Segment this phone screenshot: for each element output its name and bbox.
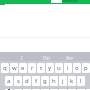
button[interactable]: s <box>14 76 22 86</box>
staticText: l <box>80 77 82 85</box>
staticText: the <box>66 55 73 61</box>
button[interactable] <box>0 0 90 4</box>
staticText: i <box>67 64 69 72</box>
staticText: I'm <box>43 55 50 61</box>
staticText: u <box>57 64 61 72</box>
staticText: d <box>25 77 29 85</box>
staticText: t <box>40 64 43 72</box>
button[interactable] <box>68 89 76 90</box>
button[interactable]: f <box>32 76 40 86</box>
button[interactable]: h <box>50 76 58 86</box>
button[interactable] <box>0 52 90 61</box>
button[interactable] <box>23 89 31 90</box>
staticText: f <box>35 77 38 85</box>
button[interactable]: a <box>5 76 13 86</box>
button[interactable] <box>59 89 67 90</box>
button[interactable] <box>5 89 13 90</box>
button[interactable]: t <box>37 63 45 73</box>
button[interactable] <box>50 89 58 90</box>
button[interactable]: I'm <box>38 54 54 61</box>
button[interactable]: p <box>82 63 90 73</box>
button[interactable]: j <box>59 76 67 86</box>
button[interactable]: l <box>77 76 85 86</box>
staticText: p <box>84 64 88 72</box>
button[interactable]: o <box>73 63 81 73</box>
button[interactable] <box>86 89 90 90</box>
button[interactable]: g <box>41 76 49 86</box>
button[interactable] <box>77 89 85 90</box>
button[interactable]: i <box>64 63 72 73</box>
button[interactable]: q <box>1 63 9 73</box>
staticText: I <box>21 55 23 61</box>
button[interactable]: d <box>23 76 31 86</box>
button[interactable] <box>41 89 49 90</box>
button[interactable]: r <box>28 63 36 73</box>
staticText: e <box>21 64 25 72</box>
staticText: y <box>48 64 52 72</box>
button[interactable] <box>14 89 22 90</box>
button[interactable]: u <box>55 63 63 73</box>
button[interactable]: the <box>61 54 77 61</box>
staticText: o <box>75 64 79 72</box>
staticText: k <box>70 77 74 85</box>
staticText: w <box>12 64 17 72</box>
button[interactable] <box>32 89 40 90</box>
staticText: j <box>62 77 64 85</box>
staticText: r <box>31 64 34 72</box>
staticText: a <box>7 77 11 85</box>
button[interactable]: e <box>19 63 27 73</box>
staticText: s <box>17 77 20 85</box>
button[interactable]: k <box>68 76 76 86</box>
staticText: h <box>52 77 56 85</box>
button[interactable]: w <box>10 63 18 73</box>
button[interactable]: y <box>46 63 54 73</box>
button[interactable]: I <box>14 54 30 61</box>
staticText: q <box>3 64 7 72</box>
staticText: g <box>43 77 47 85</box>
